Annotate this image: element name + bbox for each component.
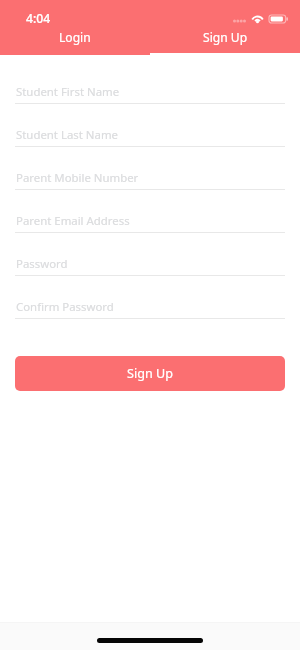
staticText: Student Last Name <box>16 127 118 143</box>
staticText: Parent Mobile Number <box>16 170 139 186</box>
button[interactable]: Password <box>15 233 285 275</box>
staticText: Confirm Password <box>16 299 114 315</box>
button[interactable]: Login <box>0 28 150 55</box>
button[interactable]: Student Last Name <box>15 104 285 146</box>
button[interactable]: Sign Up <box>15 356 285 391</box>
staticText: Student First Name <box>16 84 120 100</box>
button[interactable]: Student First Name <box>15 61 285 103</box>
staticText: Sign Up <box>203 29 248 45</box>
button[interactable]: Parent Email Address <box>15 190 285 232</box>
button[interactable]: Confirm Password <box>15 276 285 318</box>
button[interactable]: Parent Mobile Number <box>15 147 285 189</box>
staticText: Password <box>16 256 68 272</box>
staticText: Sign Up <box>127 365 173 382</box>
staticText: Parent Email Address <box>16 213 130 229</box>
staticText: 4:04 <box>26 10 51 27</box>
button[interactable]: Sign Up <box>150 28 300 55</box>
staticText: Login <box>59 29 91 45</box>
